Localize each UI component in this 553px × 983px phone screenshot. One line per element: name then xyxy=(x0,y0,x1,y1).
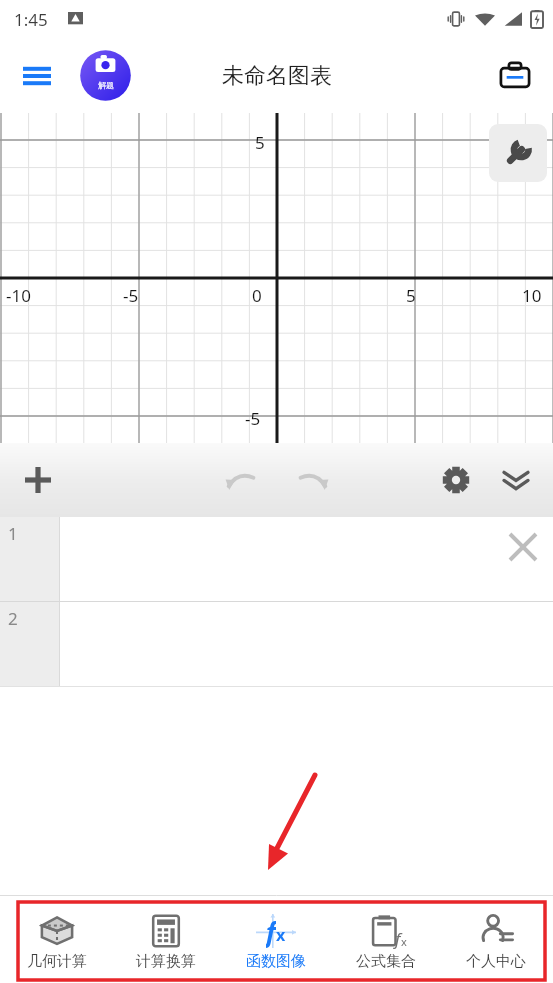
button[interactable]: Add expression xyxy=(12,454,64,506)
button[interactable]: Collapse xyxy=(491,455,541,505)
button[interactable]: Redo xyxy=(288,454,340,506)
staticText: -5 xyxy=(245,407,261,430)
staticText: 5 xyxy=(255,131,265,154)
staticText: 公式集合 xyxy=(356,952,416,971)
staticText: 个人中心 xyxy=(466,952,526,971)
button[interactable]: f xyxy=(221,901,331,983)
button[interactable]: Undo xyxy=(214,454,266,506)
button[interactable]: 个人中心 xyxy=(441,901,551,983)
button[interactable]: Settings xyxy=(431,455,481,505)
staticText: 未命名图表 xyxy=(222,62,332,90)
staticText: f xyxy=(266,914,276,948)
button[interactable]: 几何计算 xyxy=(2,901,111,983)
staticText: f xyxy=(395,927,401,950)
button[interactable]: Graph settings xyxy=(489,124,547,182)
staticText: x xyxy=(401,934,407,949)
staticText: 函数图像 xyxy=(246,952,306,971)
staticText: 10 xyxy=(522,284,542,307)
button[interactable]: Work profile xyxy=(491,52,539,100)
staticText: x xyxy=(276,924,286,946)
button[interactable]: f xyxy=(331,901,441,983)
staticText: -10 xyxy=(6,284,31,307)
button[interactable]: Menu xyxy=(12,51,62,101)
staticText: 1:45 xyxy=(14,8,48,31)
staticText: 5 xyxy=(406,284,416,307)
staticText: 1 xyxy=(8,522,18,545)
button[interactable]: Scan problem xyxy=(78,48,133,103)
staticText: 0 xyxy=(252,284,262,307)
button[interactable]: 1 xyxy=(0,517,553,601)
staticText: 几何计算 xyxy=(27,952,87,971)
staticText: -5 xyxy=(123,284,139,307)
staticText: 2 xyxy=(8,607,18,630)
button[interactable]: 2 xyxy=(0,602,553,686)
staticText: 计算换算 xyxy=(136,952,196,971)
button[interactable]: Delete expression xyxy=(501,525,545,569)
button[interactable]: 计算换算 xyxy=(111,901,221,983)
staticText: 解题 xyxy=(98,80,114,90)
